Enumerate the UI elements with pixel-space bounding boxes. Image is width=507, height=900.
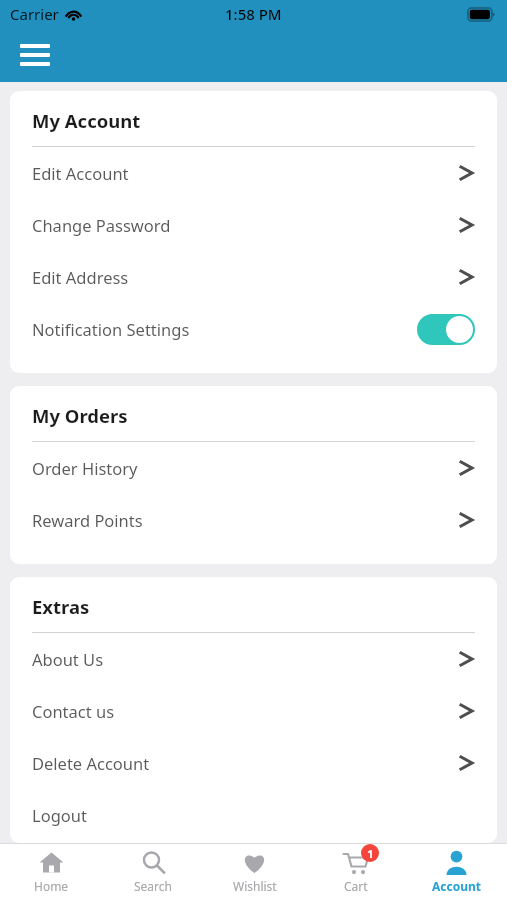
staticText: My Account	[32, 108, 141, 133]
button[interactable]: Logout	[32, 789, 475, 841]
staticText: Search	[134, 878, 172, 894]
button[interactable]: Search	[102, 844, 204, 900]
button[interactable]: Reward Points	[32, 494, 475, 546]
button[interactable]: Change Password	[32, 199, 475, 251]
button[interactable]: Notification Settings	[32, 303, 475, 355]
staticText: Account	[432, 878, 481, 894]
button[interactable]: 1	[305, 844, 406, 900]
staticText: Delete Account	[32, 752, 458, 774]
button[interactable]: Account	[406, 844, 507, 900]
staticText: Change Password	[32, 214, 458, 236]
button[interactable]: Order History	[32, 442, 475, 494]
staticText: Wishlist	[233, 878, 277, 894]
staticText: About Us	[32, 648, 458, 670]
button[interactable]: Delete Account	[32, 737, 475, 789]
staticText: Home	[34, 878, 69, 894]
button[interactable]: Wishlist	[204, 844, 305, 900]
button[interactable]: Open navigation menu	[13, 33, 57, 77]
staticText: Order History	[32, 457, 458, 479]
button[interactable]: About Us	[32, 633, 475, 685]
staticText: 1:58 PM	[225, 4, 282, 24]
staticText: Carrier	[10, 4, 59, 24]
button[interactable]: Contact us	[32, 685, 475, 737]
staticText: Notification Settings	[32, 318, 417, 340]
button[interactable]: Edit Address	[32, 251, 475, 303]
staticText: Extras	[32, 594, 90, 619]
staticText: 1	[367, 846, 374, 861]
button[interactable]: Edit Account	[32, 147, 475, 199]
staticText: Contact us	[32, 700, 458, 722]
staticText: My Orders	[32, 403, 128, 428]
staticText: Reward Points	[32, 509, 458, 531]
staticText: Edit Account	[32, 162, 458, 184]
staticText: Edit Address	[32, 266, 458, 288]
staticText: Cart	[344, 878, 368, 894]
button[interactable]: Home	[0, 844, 102, 900]
staticText: Logout	[32, 804, 475, 826]
